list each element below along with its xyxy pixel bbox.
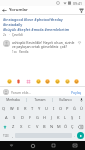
staticText: X <box>20 124 23 129</box>
staticText: Tamam <box>34 98 46 102</box>
button[interactable]: Kullanıcı <box>53 96 78 104</box>
button[interactable]: Ü <box>78 104 85 113</box>
staticText: W <box>10 106 14 111</box>
button[interactable]: Merhaba <box>0 96 26 104</box>
button[interactable]: , <box>10 131 15 140</box>
staticText: #instagood #love #photooftheday #instada… <box>3 17 82 27</box>
button[interactable]: Ş <box>69 113 76 122</box>
staticText: Ö <box>64 124 68 129</box>
button[interactable]: Y <box>36 104 43 113</box>
button[interactable]: A <box>2 113 10 122</box>
button[interactable]: Filter <box>77 6 85 14</box>
button[interactable]: Emoji 4 <box>35 78 41 84</box>
button[interactable]: V <box>33 122 41 131</box>
staticText: Ü <box>80 106 83 111</box>
staticText: 2s <box>3 33 7 37</box>
staticText: E <box>17 106 20 111</box>
button[interactable]: Emoji 1 <box>6 78 12 84</box>
button[interactable]: Q <box>0 104 8 113</box>
button[interactable]: Home <box>22 141 43 150</box>
button[interactable]: Recents <box>43 141 64 150</box>
button[interactable]: Emoji 7 <box>64 78 70 84</box>
staticText: 09:41 <box>73 1 82 6</box>
button[interactable]: R <box>22 104 29 113</box>
button[interactable]: Keyboard <box>64 141 85 150</box>
button[interactable]: F <box>26 113 34 122</box>
staticText: H <box>43 115 46 120</box>
button[interactable]: E <box>15 104 22 113</box>
button[interactable]: Like comment <box>77 40 82 45</box>
staticText: Yorumlar <box>9 7 28 13</box>
button[interactable]: Yorum ekle… <box>11 90 71 94</box>
button[interactable]: G <box>34 113 41 122</box>
staticText: F <box>29 115 32 120</box>
button[interactable]: Paylaş <box>71 90 82 94</box>
button[interactable]: Backspace <box>76 122 85 131</box>
staticText: B <box>43 124 46 129</box>
staticText: Q <box>2 106 6 111</box>
button[interactable]: Back <box>0 6 8 14</box>
button[interactable]: T <box>29 104 36 113</box>
staticText: L <box>64 115 67 120</box>
staticText: J <box>51 115 53 120</box>
staticText: M <box>57 124 61 129</box>
button[interactable]: Tamam <box>27 96 52 104</box>
staticText: S <box>13 115 16 120</box>
button[interactable]: Emoji 2 <box>15 78 21 84</box>
button[interactable]: W <box>8 104 15 113</box>
button[interactable]: Emoji 5 <box>44 78 50 84</box>
button[interactable]: M <box>55 122 62 131</box>
staticText: N <box>50 124 54 129</box>
button[interactable]: D <box>18 113 26 122</box>
button[interactable]: Voice input <box>78 96 85 104</box>
button[interactable]: Çevrildi <box>12 33 23 37</box>
staticText: A <box>5 115 8 120</box>
button[interactable]: Emoji 3 <box>25 78 31 84</box>
button[interactable]: J <box>48 113 55 122</box>
staticText: U <box>45 106 48 111</box>
staticText: ?123 <box>3 134 9 138</box>
button[interactable]: #instagood #love #photooftheday #instada… <box>0 15 85 38</box>
button[interactable]: N <box>48 122 55 131</box>
staticText: 1sa <box>12 50 17 54</box>
button[interactable]: Emoji 6 <box>54 78 60 84</box>
button[interactable]: Ç <box>69 122 76 131</box>
staticText: I <box>79 115 81 120</box>
staticText: C <box>28 124 31 129</box>
button[interactable]: H <box>41 113 48 122</box>
staticText: Ğ <box>73 106 76 111</box>
staticText: Yanıtla <box>19 50 29 54</box>
staticText: ashiqabi Kesinlikle! Hayırlı olsun, sizi… <box>12 40 76 49</box>
button[interactable]: ashiqabi Kesinlikle! Hayırlı olsun, sizi… <box>0 38 85 54</box>
button[interactable]: O <box>57 104 64 113</box>
button[interactable]: ?123 <box>1 131 10 140</box>
button[interactable]: Emoji 8 <box>73 78 79 84</box>
button[interactable]: X <box>17 122 25 131</box>
staticText: D <box>21 115 24 120</box>
button[interactable]: Shift <box>0 122 9 131</box>
button[interactable]: C <box>25 122 33 131</box>
staticText: , <box>12 133 13 138</box>
staticText: . <box>74 133 75 138</box>
button[interactable]: Yanıtla <box>19 50 29 54</box>
button[interactable]: I <box>50 104 57 113</box>
button[interactable]: Ğ <box>71 104 78 113</box>
button[interactable]: Send <box>77 132 84 139</box>
staticText: Çevrildi <box>12 33 23 37</box>
staticText: Yorum ekle… <box>11 90 31 94</box>
button[interactable]: K <box>55 113 62 122</box>
staticText: Merhaba <box>6 98 20 102</box>
staticText: Ş <box>71 115 74 120</box>
button[interactable]: U <box>43 104 50 113</box>
button[interactable]: S <box>10 113 18 122</box>
button[interactable]: I <box>76 113 83 122</box>
button[interactable]: . <box>72 131 77 140</box>
staticText: T <box>31 106 34 111</box>
button[interactable]: Back <box>0 141 22 150</box>
button[interactable]: Z <box>9 122 17 131</box>
button[interactable]: Ö <box>62 122 69 131</box>
button[interactable]: P <box>64 104 71 113</box>
button[interactable]: B <box>41 122 48 131</box>
button[interactable]: L <box>62 113 69 122</box>
